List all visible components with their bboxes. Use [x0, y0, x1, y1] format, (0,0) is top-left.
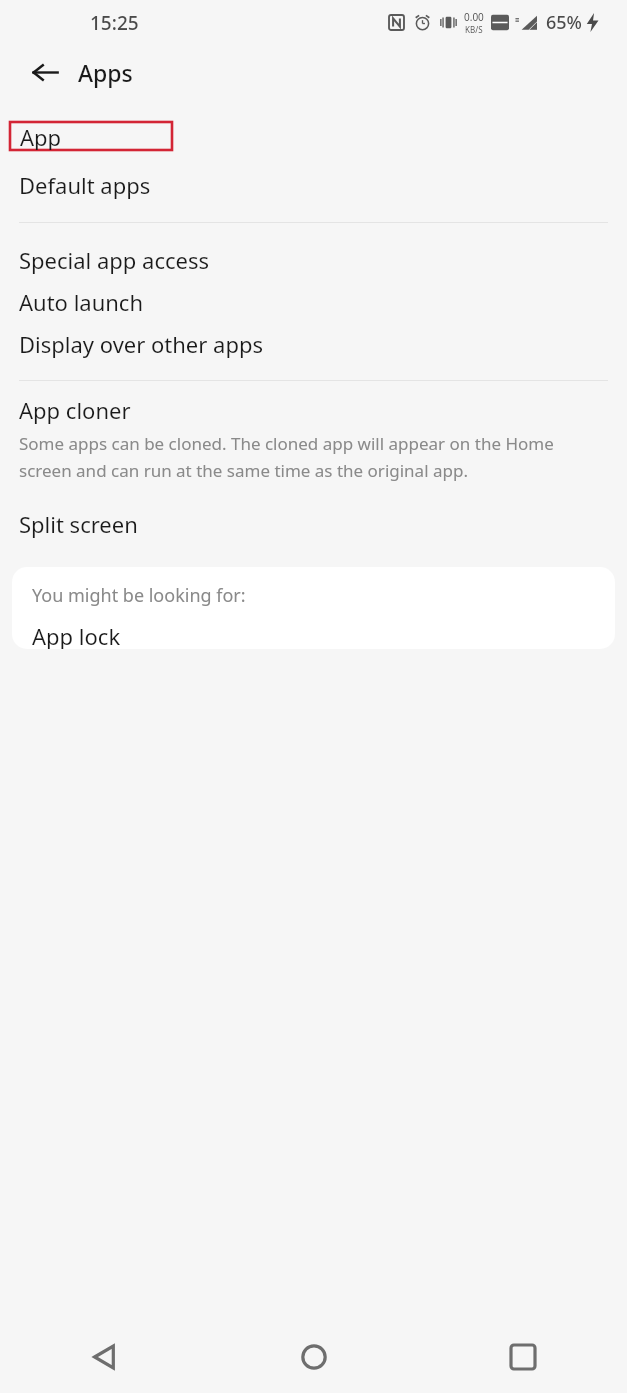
button[interactable]: Display over other apps: [0, 323, 627, 365]
button[interactable]: Home: [209, 1321, 418, 1393]
button[interactable]: Recent apps: [418, 1321, 627, 1393]
staticText: Apps: [78, 57, 133, 88]
button[interactable]: Back: [0, 1321, 209, 1393]
staticText: 65%: [546, 10, 582, 35]
staticText: Auto launch: [19, 287, 143, 317]
staticText: Special app access: [19, 245, 210, 275]
staticText: You might be looking for:: [32, 583, 246, 608]
staticText: Display over other apps: [19, 329, 264, 359]
button[interactable]: App lock: [12, 621, 615, 649]
staticText: App management: [20, 122, 172, 150]
button[interactable]: Special app access: [0, 239, 627, 281]
button[interactable]: Auto launch: [0, 281, 627, 323]
button[interactable]: App cloner: [0, 395, 627, 482]
button[interactable]: Default apps: [0, 164, 627, 206]
staticText: App lock: [32, 621, 121, 649]
button[interactable]: Split screen: [0, 503, 627, 545]
staticText: 15:25: [90, 10, 139, 36]
button[interactable]: App management: [10, 122, 172, 150]
staticText: Some apps can be cloned. The cloned app …: [19, 432, 608, 482]
staticText: 0.00: [464, 10, 484, 24]
staticText: App cloner: [19, 395, 131, 425]
staticText: KB/S: [465, 24, 483, 35]
staticText: Split screen: [19, 509, 138, 539]
button[interactable]: Back: [26, 53, 64, 91]
staticText: Default apps: [19, 170, 151, 200]
